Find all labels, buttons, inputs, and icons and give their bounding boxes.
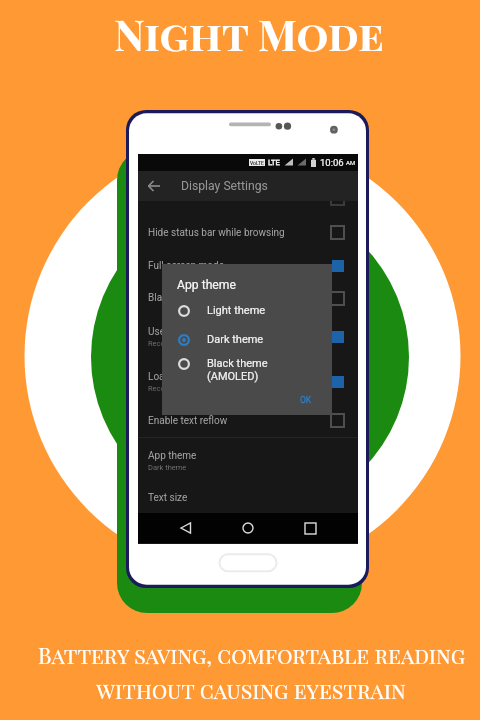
staticText: Black theme (207, 357, 268, 370)
button[interactable]: Light theme (162, 304, 332, 317)
button[interactable]: Text size (138, 483, 358, 513)
button[interactable]: Back (172, 514, 200, 542)
button[interactable]: Dark theme (162, 333, 332, 346)
staticText: LTE (268, 158, 280, 167)
button[interactable]: OK (300, 395, 312, 405)
button[interactable]: Load images (138, 359, 358, 404)
button[interactable]: Back (143, 175, 165, 197)
staticText: Dark theme (148, 463, 187, 472)
staticText: Display Settings (181, 179, 268, 193)
staticText: VoLTE (250, 160, 264, 166)
staticText: Battery saving, comfortable reading (38, 641, 465, 670)
staticText: App theme (148, 450, 197, 462)
button[interactable]: Home (234, 514, 262, 542)
staticText: App theme (177, 278, 236, 292)
button[interactable]: Recents (296, 514, 324, 542)
staticText: Black status bar (148, 292, 220, 304)
staticText: Night Mode (9, 6, 480, 62)
staticText: Hide status bar while browsing (148, 227, 285, 239)
staticText: (AMOLED) (207, 370, 259, 383)
staticText: Enable text reflow (148, 415, 228, 427)
staticText: Use volume keys (148, 326, 223, 338)
staticText: Full screen mode (148, 260, 224, 272)
button[interactable]: Black status bar (138, 282, 358, 314)
staticText: Dark theme (207, 333, 264, 346)
button[interactable]: Full screen mode (138, 249, 358, 282)
button[interactable]: Hide status bar while browsing (138, 216, 358, 249)
staticText: AM (346, 159, 356, 166)
staticText: without causing eyestrain (96, 676, 406, 705)
staticText: Recommended (148, 384, 199, 393)
staticText: Recommended (148, 339, 199, 348)
button[interactable]: Use volume keys (138, 314, 358, 359)
button[interactable]: Black theme (162, 357, 332, 383)
staticText: Load images (148, 371, 206, 383)
staticText: Light theme (207, 304, 266, 317)
staticText: OK (300, 395, 312, 405)
button[interactable]: Enable text reflow (138, 404, 358, 437)
staticText: 10:06 (320, 157, 344, 168)
button[interactable]: App theme (138, 438, 358, 483)
staticText: Text size (148, 492, 188, 504)
